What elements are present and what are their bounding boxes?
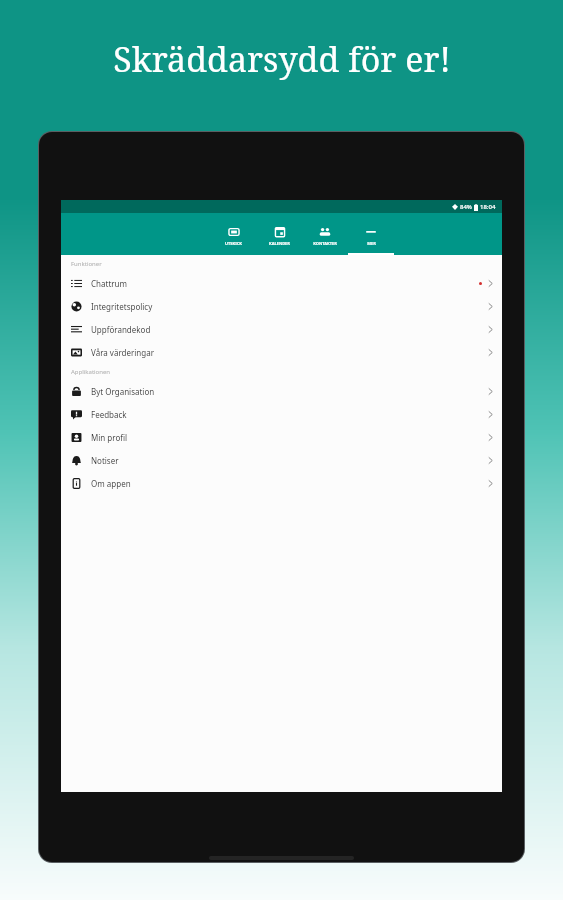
staticText: 18:04 <box>480 203 496 211</box>
button[interactable]: Chattrum <box>61 272 502 295</box>
staticText: KONTAKTER <box>313 241 337 246</box>
button[interactable]: UTSKICK <box>210 213 256 255</box>
staticText: Min profil <box>91 432 128 443</box>
staticText: Uppförandekod <box>91 324 151 335</box>
button[interactable]: Feedback <box>61 403 502 426</box>
button[interactable]: KALENDER <box>256 213 302 255</box>
staticText: Feedback <box>91 409 127 420</box>
button[interactable]: Byt Organisation <box>61 380 502 403</box>
staticText: Applikationen <box>71 368 111 376</box>
staticText: Om appen <box>91 478 131 489</box>
button[interactable]: Notiser <box>61 449 502 472</box>
button[interactable]: Om appen <box>61 472 502 495</box>
staticText: Notiser <box>91 455 119 466</box>
button[interactable]: Integritetspolicy <box>61 295 502 318</box>
button[interactable]: Våra värderingar <box>61 341 502 364</box>
button[interactable]: Min profil <box>61 426 502 449</box>
staticText: Byt Organisation <box>91 386 155 397</box>
button[interactable]: KONTAKTER <box>302 213 348 255</box>
staticText: Chattrum <box>91 278 127 289</box>
staticText: Våra värderingar <box>91 347 154 358</box>
button[interactable]: MER <box>348 213 394 255</box>
staticText: MER <box>367 241 376 246</box>
staticText: 84% <box>460 203 472 211</box>
staticText: Funktioner <box>71 260 102 268</box>
staticText: UTSKICK <box>225 241 242 246</box>
staticText: Integritetspolicy <box>91 301 153 312</box>
staticText: KALENDER <box>269 241 290 246</box>
button[interactable]: Uppförandekod <box>61 318 502 341</box>
staticText: Skräddarsydd för er! <box>113 36 451 82</box>
